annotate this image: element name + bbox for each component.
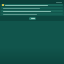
button[interactable]: Confirm xyxy=(29,17,36,20)
button[interactable]: List item 1 xyxy=(1,4,63,6)
button[interactable]: List item 3 xyxy=(1,10,63,12)
button[interactable]: List item 2 xyxy=(1,7,63,9)
button[interactable]: List item 4 xyxy=(1,13,63,15)
